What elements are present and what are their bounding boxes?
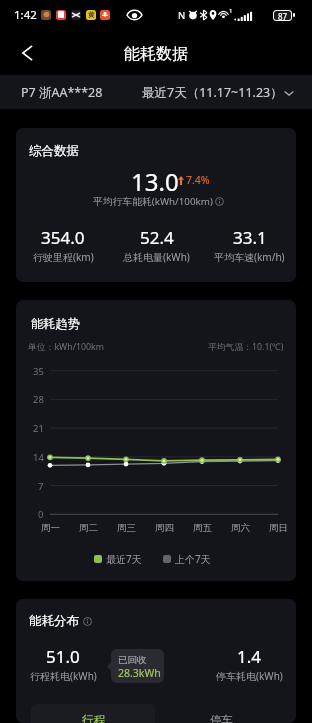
staticText: P7 浙AA***28: [21, 84, 103, 101]
staticText: 能耗分布: [29, 613, 79, 629]
staticText: 1.4: [237, 645, 262, 668]
button[interactable]: P7 浙AA***28: [21, 84, 103, 101]
staticText: 最近7天: [106, 552, 142, 566]
staticText: 1:42: [14, 7, 37, 23]
staticText: 51.0: [46, 645, 80, 668]
staticText: 平均气温：10.1(℃): [208, 341, 284, 353]
staticText: 35: [33, 365, 44, 377]
staticText: 7.4%: [186, 173, 210, 187]
staticText: 354.0: [41, 226, 85, 249]
staticText: 周日: [269, 522, 288, 534]
staticText: 14: [33, 451, 44, 463]
staticText: 停车耗电(kWh): [216, 669, 283, 683]
staticText: 33.1: [233, 226, 267, 249]
staticText: 最近7天（11.17~11.23）: [142, 84, 283, 101]
staticText: 能耗趋势: [31, 316, 80, 331]
staticText: 28.3kWh: [118, 666, 161, 680]
staticText: 周六: [231, 522, 250, 534]
staticText: 综合数据: [29, 143, 79, 159]
staticText: 周三: [117, 522, 136, 534]
button[interactable]: 停车: [159, 704, 283, 723]
staticText: 总耗电量(kWh): [123, 250, 190, 264]
staticText: 停车: [210, 713, 233, 723]
staticText: 周一: [41, 522, 60, 534]
staticText: N: [178, 9, 186, 22]
button[interactable]: Back: [9, 35, 45, 71]
staticText: 行程耗电(kWh): [30, 669, 97, 683]
staticText: 1: [229, 7, 233, 15]
staticText: 周五: [193, 522, 212, 534]
staticText: 行驶里程(km): [33, 250, 94, 264]
staticText: 已回收: [118, 654, 147, 666]
staticText: 上个7天: [175, 552, 211, 566]
staticText: 黄: [88, 11, 95, 19]
staticText: 52.4: [140, 226, 174, 249]
staticText: 平均行车能耗(kWh/100km): [93, 195, 213, 208]
staticText: 28: [33, 393, 44, 405]
staticText: 单位：kWh/100km: [28, 341, 104, 353]
staticText: 7: [38, 480, 44, 492]
staticText: 13.0: [131, 165, 179, 198]
staticText: 周四: [155, 522, 174, 534]
staticText: 87: [278, 11, 288, 20]
button[interactable]: 最近7天（11.17~11.23）: [142, 84, 294, 101]
staticText: 周二: [79, 522, 98, 534]
staticText: 平均车速(km/h): [214, 250, 285, 264]
staticText: 能耗数据: [124, 44, 188, 64]
button[interactable]: 行程: [31, 704, 155, 723]
staticText: 21: [33, 422, 44, 434]
staticText: 0: [38, 508, 44, 520]
staticText: 行程: [82, 713, 105, 723]
